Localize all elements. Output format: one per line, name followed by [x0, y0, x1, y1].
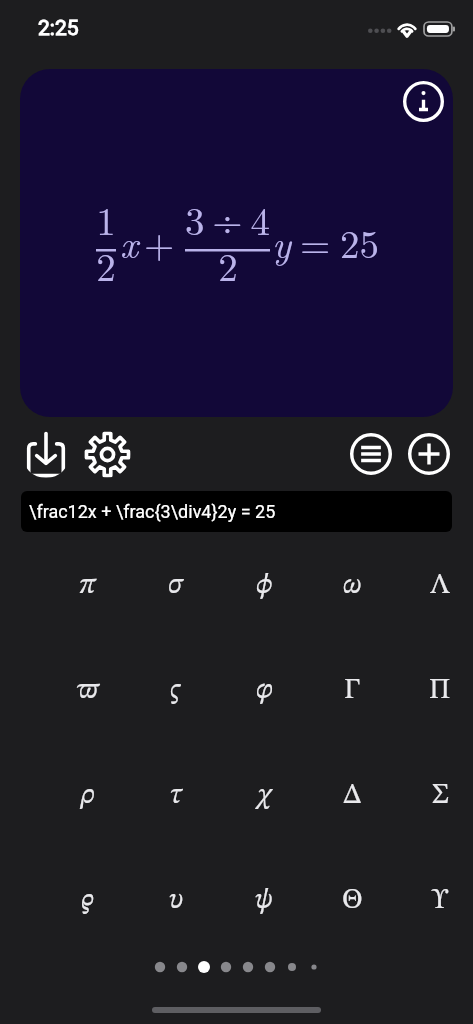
button[interactable]: Λ: [396, 533, 473, 638]
staticText: 𝜌: [80, 782, 96, 810]
button[interactable]: 𝜓: [220, 848, 308, 953]
staticText: 2: [218, 237, 238, 292]
staticText: 25: [340, 214, 380, 269]
button[interactable]: Σ: [396, 743, 473, 848]
button[interactable]: 𝜌: [44, 743, 132, 848]
button[interactable]: 𝜙: [220, 533, 308, 638]
button[interactable]: Save: [22, 430, 70, 478]
button[interactable]: \frac12x + \frac{3\div4}2y = 25: [21, 491, 452, 532]
staticText: \frac12x + \frac{3\div4}2y = 25: [29, 501, 276, 522]
staticText: 𝜒: [255, 782, 273, 810]
staticText: 𝜍: [170, 677, 182, 705]
button[interactable]: Info: [399, 77, 447, 125]
button[interactable]: 𝜏: [132, 743, 220, 848]
staticText: Σ: [432, 782, 449, 810]
button[interactable]: 𝜔: [308, 533, 396, 638]
button[interactable]: 𝜛: [44, 638, 132, 743]
staticText: 𝜑: [256, 677, 273, 705]
staticText: 𝜚: [81, 887, 95, 915]
button[interactable]: Add: [405, 430, 453, 478]
staticText: 𝜙: [256, 572, 273, 600]
button[interactable]: ϒ: [396, 848, 473, 953]
staticText: x: [120, 214, 139, 269]
button[interactable]: 𝜍: [132, 638, 220, 743]
button[interactable]: 𝜒: [220, 743, 308, 848]
staticText: 𝜔: [343, 572, 362, 600]
staticText: 𝜐: [169, 887, 184, 915]
button[interactable]: 𝜎: [132, 533, 220, 638]
staticText: 𝜓: [255, 887, 273, 915]
button[interactable]: Π: [396, 638, 473, 743]
staticText: 𝜏: [170, 782, 183, 810]
staticText: Λ: [430, 572, 450, 600]
button[interactable]: Menu: [347, 430, 395, 478]
button[interactable]: 𝜑: [220, 638, 308, 743]
button[interactable]: 𝜚: [44, 848, 132, 953]
staticText: +: [144, 214, 175, 269]
button[interactable]: Settings: [83, 430, 131, 478]
staticText: Γ: [344, 677, 360, 705]
staticText: 3 ÷ 4: [185, 191, 270, 246]
staticText: 𝜎: [168, 572, 184, 600]
staticText: 2: [96, 237, 116, 292]
staticText: Π: [429, 677, 451, 705]
staticText: 1: [96, 191, 116, 246]
staticText: ϒ: [431, 887, 449, 915]
staticText: Δ: [343, 782, 362, 810]
staticText: 𝜋: [79, 572, 97, 600]
staticText: =: [300, 214, 331, 269]
button[interactable]: 𝜋: [44, 533, 132, 638]
button[interactable]: 𝜐: [132, 848, 220, 953]
button[interactable]: Θ: [308, 848, 396, 953]
button[interactable]: Δ: [308, 743, 396, 848]
staticText: 2:25: [38, 16, 79, 41]
staticText: y: [272, 214, 291, 269]
staticText: 𝜛: [76, 677, 101, 705]
button[interactable]: Γ: [308, 638, 396, 743]
staticText: Θ: [342, 887, 363, 915]
button[interactable]: Info: [20, 69, 453, 417]
